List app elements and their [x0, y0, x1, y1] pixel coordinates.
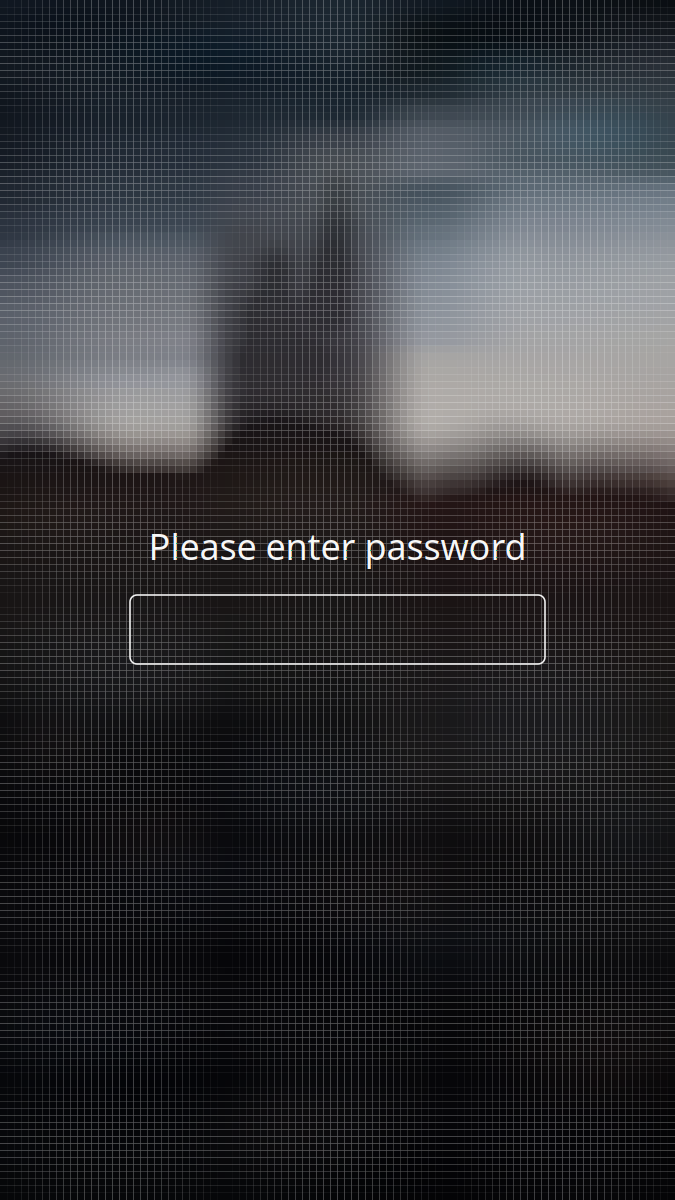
button[interactable]: Password: [130, 595, 545, 664]
staticText: Please enter password: [148, 522, 526, 570]
